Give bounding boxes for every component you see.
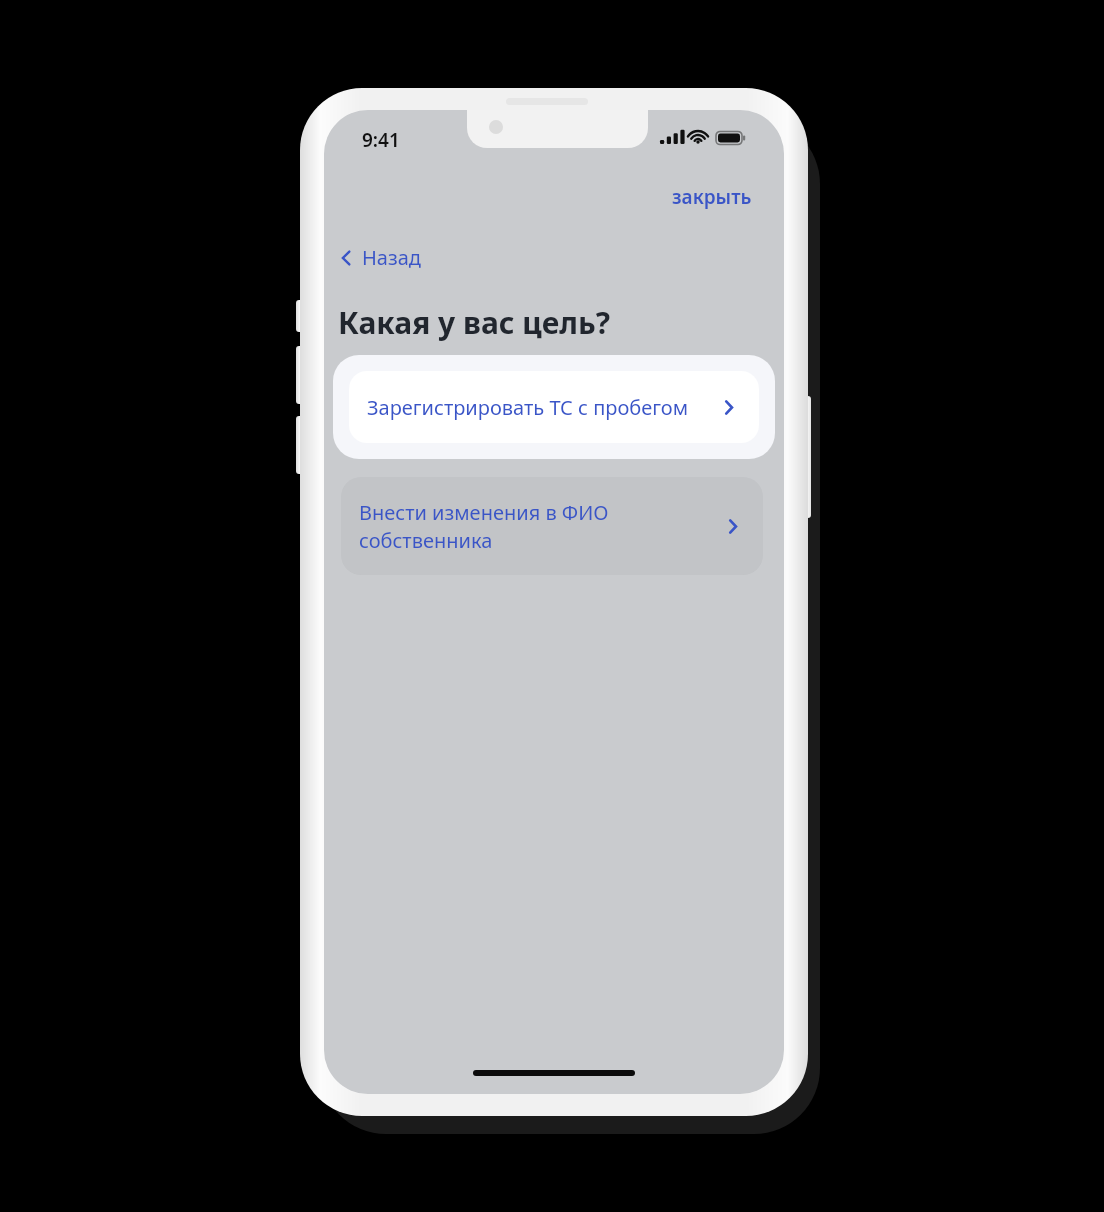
staticText: Какая у вас цель? xyxy=(338,302,611,343)
other: Open xyxy=(717,395,741,419)
staticText: закрыть xyxy=(672,184,752,210)
button[interactable]: закрыть xyxy=(664,178,760,216)
button[interactable]: Зарегистрировать ТС с пробегом xyxy=(349,371,759,443)
staticText: Назад xyxy=(362,244,421,271)
staticText: Зарегистрировать ТС с пробегом xyxy=(367,394,717,421)
button[interactable]: Внести изменения в ФИО собственника xyxy=(341,477,763,575)
button[interactable]: Назад xyxy=(332,238,429,277)
other: Open xyxy=(721,514,745,538)
staticText: 9:41 xyxy=(362,127,400,153)
staticText: Внести изменения в ФИО собственника xyxy=(359,499,721,554)
